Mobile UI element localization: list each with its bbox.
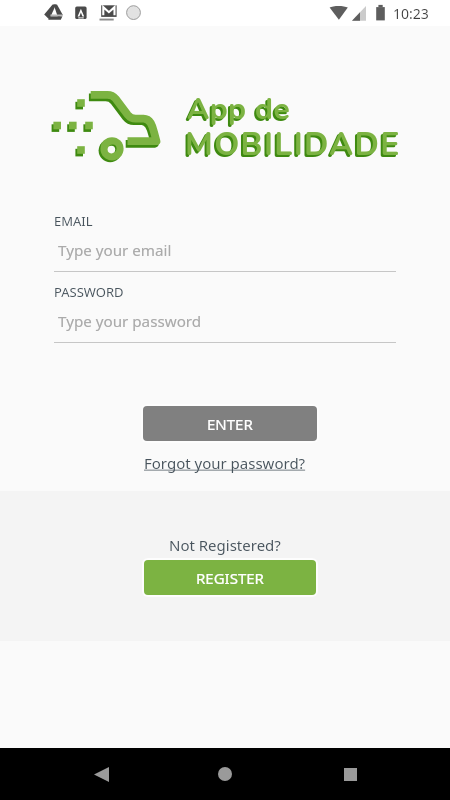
staticText: Not Registered? <box>169 535 281 555</box>
staticText: MOBILIDADE <box>183 125 399 169</box>
staticText: PASSWORD <box>54 283 124 301</box>
staticText: Type your email <box>58 240 172 261</box>
staticText: ENTER <box>207 414 253 434</box>
staticText: App de <box>185 91 289 132</box>
button[interactable]: PASSWORD <box>54 281 396 343</box>
button[interactable]: EMAIL <box>54 210 396 272</box>
staticText: REGISTER <box>196 568 264 588</box>
staticText: MOBILIDADE <box>185 123 401 167</box>
button[interactable]: Forgot your password? <box>144 453 306 473</box>
button[interactable]: ENTER <box>141 404 319 443</box>
staticText: 10:23 <box>393 4 429 23</box>
button[interactable]: REGISTER <box>142 558 318 597</box>
staticText: EMAIL <box>54 212 93 230</box>
staticText: Type your password <box>58 311 202 332</box>
button[interactable]: Home <box>201 750 249 798</box>
button[interactable]: Recent apps <box>326 750 374 798</box>
staticText: App de <box>187 89 291 130</box>
button[interactable]: Back <box>77 750 125 798</box>
